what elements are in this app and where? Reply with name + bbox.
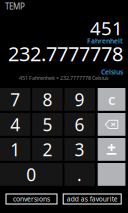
- staticText: conversions: [13, 195, 50, 203]
- staticText: 0: [26, 163, 36, 186]
- button[interactable]: More: [98, 163, 125, 186]
- button[interactable]: 9: [64, 88, 95, 111]
- staticText: 232.7777778: [8, 40, 123, 67]
- staticText: Celsius: [101, 68, 123, 76]
- button[interactable]: conversions: [6, 194, 57, 204]
- staticText: Fahrenheit: [87, 37, 123, 45]
- staticText: 2: [42, 138, 52, 161]
- button[interactable]: 0: [0, 163, 63, 186]
- staticText: 451 Fahrenheit = 232.7777778 Celsius: [19, 74, 109, 82]
- button[interactable]: TEMP: [5, 2, 45, 11]
- staticText: add as favourite: [67, 195, 118, 203]
- button[interactable]: Clear: [98, 88, 125, 111]
- staticText: 7: [10, 88, 20, 111]
- staticText: 5: [42, 113, 52, 136]
- staticText: c: [108, 90, 115, 109]
- staticText: 451: [90, 16, 123, 40]
- staticText: 6: [75, 113, 85, 136]
- staticText: 8: [42, 88, 52, 111]
- staticText: 4: [10, 113, 20, 136]
- button[interactable]: 7: [0, 88, 30, 111]
- staticText: 3: [75, 138, 85, 161]
- button[interactable]: .: [64, 163, 95, 186]
- button[interactable]: 3: [64, 138, 95, 161]
- staticText: .: [77, 163, 82, 186]
- button[interactable]: 1: [0, 138, 30, 161]
- button[interactable]: 6: [64, 113, 95, 136]
- staticText: 9: [75, 88, 85, 111]
- staticText: 1: [10, 138, 20, 161]
- button[interactable]: Backspace: [98, 113, 125, 136]
- button[interactable]: 5: [32, 113, 63, 136]
- button[interactable]: add as favourite: [63, 194, 121, 204]
- staticText: TEMP: [5, 1, 25, 12]
- button[interactable]: Plus minus: [98, 138, 125, 161]
- button[interactable]: 4: [0, 113, 30, 136]
- button[interactable]: 2: [32, 138, 63, 161]
- staticText: [108, 159, 114, 189]
- button[interactable]: 8: [32, 88, 63, 111]
